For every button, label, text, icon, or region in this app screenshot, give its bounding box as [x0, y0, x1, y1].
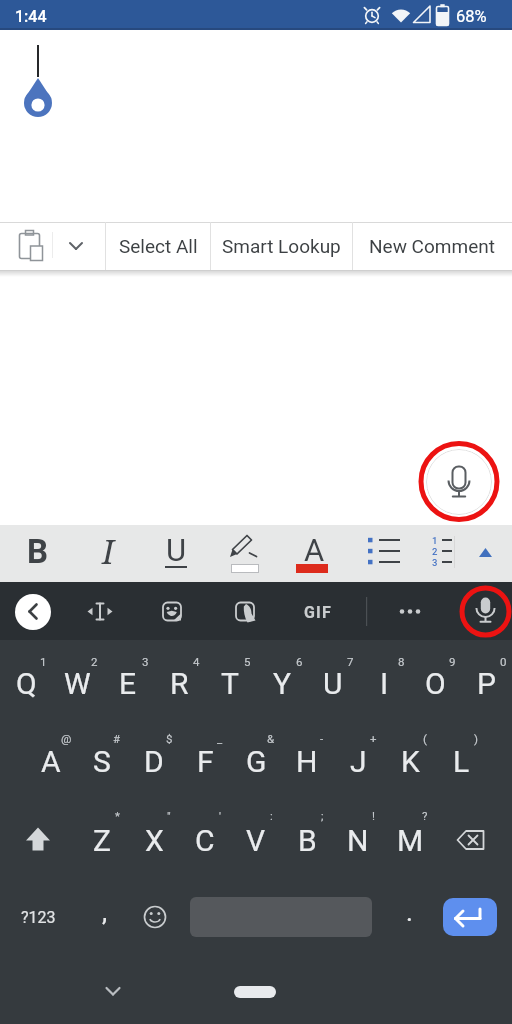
staticText: 3	[432, 557, 438, 568]
staticText: T	[221, 666, 239, 701]
staticText: &	[267, 732, 275, 745]
staticText: :	[270, 809, 273, 822]
staticText: "	[167, 809, 171, 822]
staticText: H	[296, 744, 318, 779]
staticText: R	[170, 666, 189, 701]
staticText: Z	[93, 823, 111, 858]
button[interactable]	[238, 525, 290, 582]
button[interactable]	[296, 588, 340, 634]
button[interactable]	[435, 800, 512, 878]
staticText: 9	[449, 655, 456, 668]
button[interactable]	[67, 525, 119, 582]
staticText: J	[350, 744, 367, 779]
button[interactable]	[333, 722, 384, 800]
button[interactable]	[410, 644, 461, 722]
button[interactable]	[210, 222, 352, 270]
staticText: 3	[142, 655, 149, 668]
staticText: P	[477, 666, 496, 701]
button[interactable]	[282, 800, 333, 878]
button[interactable]	[384, 878, 435, 956]
button[interactable]	[435, 722, 486, 800]
staticText: X	[145, 823, 164, 858]
staticText: #	[113, 732, 121, 745]
staticText: K	[401, 744, 420, 779]
button[interactable]	[282, 722, 333, 800]
staticText: S	[93, 744, 111, 779]
button[interactable]	[256, 644, 307, 722]
button[interactable]	[77, 722, 128, 800]
staticText: E	[119, 666, 137, 701]
staticText: 6	[296, 655, 303, 668]
button[interactable]	[77, 878, 128, 956]
staticText: 8	[398, 655, 405, 668]
button[interactable]	[384, 722, 435, 800]
button[interactable]	[461, 644, 512, 722]
button[interactable]	[152, 588, 196, 634]
button[interactable]	[0, 222, 105, 270]
button[interactable]	[295, 525, 347, 582]
staticText: G	[246, 744, 267, 779]
staticText: Select All	[119, 235, 198, 257]
staticText: 4	[193, 655, 200, 668]
staticText: 1:44	[15, 7, 47, 26]
button[interactable]	[230, 800, 281, 878]
staticText: New Comment	[369, 235, 495, 257]
button[interactable]	[0, 644, 51, 722]
button[interactable]	[179, 800, 230, 878]
staticText: A	[304, 532, 325, 568]
staticText: A	[41, 744, 61, 779]
button[interactable]	[352, 525, 404, 582]
button[interactable]	[409, 525, 461, 582]
button[interactable]	[358, 644, 409, 722]
button[interactable]	[225, 588, 269, 634]
button[interactable]	[181, 525, 233, 582]
staticText: *	[115, 809, 120, 822]
button[interactable]	[0, 878, 77, 956]
staticText: ?123	[21, 908, 56, 927]
staticText: (	[423, 732, 427, 745]
staticText: V	[246, 823, 266, 858]
button[interactable]	[10, 525, 62, 582]
staticText: O	[425, 666, 446, 701]
staticText: +	[370, 732, 377, 745]
button[interactable]	[154, 644, 205, 722]
staticText: 7	[347, 655, 354, 668]
button[interactable]	[0, 582, 512, 640]
staticText: ,	[102, 897, 108, 927]
button[interactable]	[352, 222, 512, 270]
button[interactable]	[124, 525, 176, 582]
button[interactable]	[179, 722, 230, 800]
staticText: Q	[16, 666, 37, 701]
button[interactable]	[384, 800, 435, 878]
button[interactable]	[128, 722, 179, 800]
button[interactable]	[307, 644, 358, 722]
button[interactable]	[102, 644, 153, 722]
staticText: ?	[422, 809, 428, 822]
button[interactable]	[90, 975, 136, 1011]
button[interactable]	[51, 644, 102, 722]
staticText: Smart Lookup	[222, 235, 341, 257]
staticText: I	[102, 529, 115, 574]
button[interactable]	[15, 594, 51, 630]
button[interactable]	[205, 644, 256, 722]
button[interactable]	[333, 800, 384, 878]
button[interactable]	[128, 800, 179, 878]
staticText: U	[166, 532, 187, 568]
staticText: ;	[321, 809, 324, 822]
button[interactable]	[426, 449, 492, 515]
button[interactable]	[26, 722, 77, 800]
button[interactable]	[230, 722, 281, 800]
staticText: D	[144, 744, 164, 779]
button[interactable]	[128, 878, 179, 956]
button[interactable]	[77, 800, 128, 878]
button[interactable]	[80, 588, 124, 634]
button[interactable]	[443, 898, 497, 936]
staticText: GIF	[304, 603, 332, 622]
button[interactable]	[105, 222, 210, 270]
staticText: F	[197, 744, 214, 779]
button[interactable]	[388, 588, 432, 634]
button[interactable]	[0, 800, 77, 878]
staticText: B	[298, 823, 317, 858]
button[interactable]	[462, 588, 508, 634]
